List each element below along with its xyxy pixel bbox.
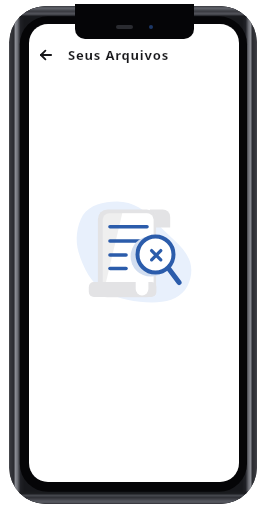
- button[interactable]: Back: [34, 43, 57, 66]
- staticText: Seus Arquivos: [68, 46, 170, 64]
